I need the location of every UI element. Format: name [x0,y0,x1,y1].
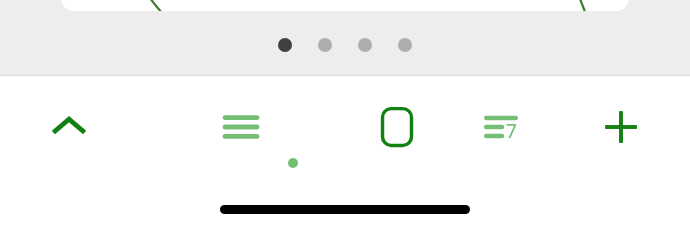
button[interactable]: Home [363,93,431,161]
staticText: 7 [506,118,517,144]
button[interactable]: Tabs, 7 open [467,93,535,161]
button[interactable]: Menu [207,93,275,161]
button[interactable] [61,0,629,11]
button[interactable]: Expand [35,93,103,161]
button[interactable]: New tab [587,93,655,161]
